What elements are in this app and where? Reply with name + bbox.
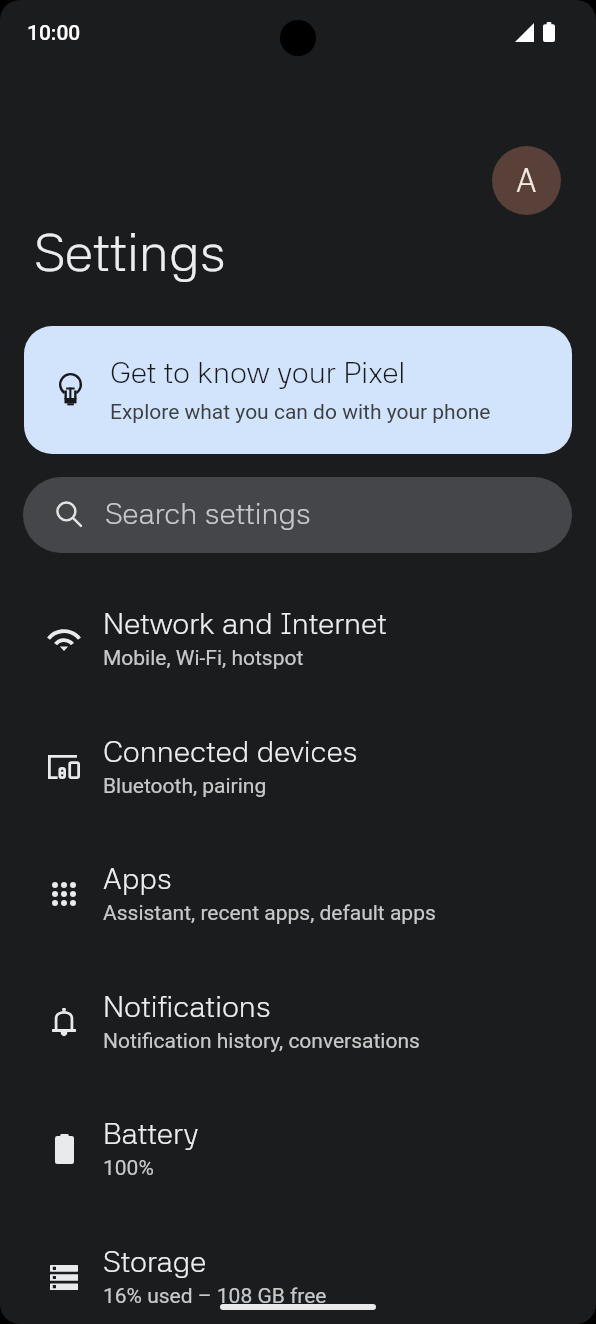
staticText: A	[516, 161, 537, 200]
button[interactable]: Search settings	[23, 477, 572, 553]
staticText: Assistant, recent apps, default apps	[103, 901, 436, 926]
staticText: Network and Internet	[103, 605, 387, 641]
staticText: Notification history, conversations	[103, 1029, 420, 1054]
button[interactable]: Account	[492, 146, 561, 215]
button[interactable]: Notifications	[0, 958, 596, 1086]
staticText: Search settings	[105, 495, 311, 531]
button[interactable]: Storage	[0, 1213, 596, 1324]
staticText: Bluetooth, pairing	[103, 774, 267, 799]
staticText: Mobile, Wi-Fi, hotspot	[103, 646, 304, 671]
staticText: Apps	[103, 860, 172, 896]
button[interactable]: Connected devices	[0, 703, 596, 831]
staticText: Get to know your Pixel	[110, 354, 406, 390]
staticText: 10:00	[27, 21, 81, 46]
button[interactable]: Apps	[0, 830, 596, 958]
button[interactable]: Get to know your Pixel	[24, 326, 572, 454]
staticText: Notifications	[103, 988, 271, 1024]
staticText: Storage	[103, 1243, 207, 1279]
button[interactable]: Network and Internet	[0, 575, 596, 703]
staticText: Explore what you can do with your phone	[110, 400, 491, 425]
staticText: Connected devices	[103, 733, 358, 769]
staticText: 16% used – 108 GB free	[103, 1284, 327, 1309]
button[interactable]: Battery	[0, 1085, 596, 1213]
staticText: Battery	[103, 1115, 199, 1151]
staticText: 100%	[103, 1156, 154, 1181]
staticText: Settings	[34, 221, 226, 284]
